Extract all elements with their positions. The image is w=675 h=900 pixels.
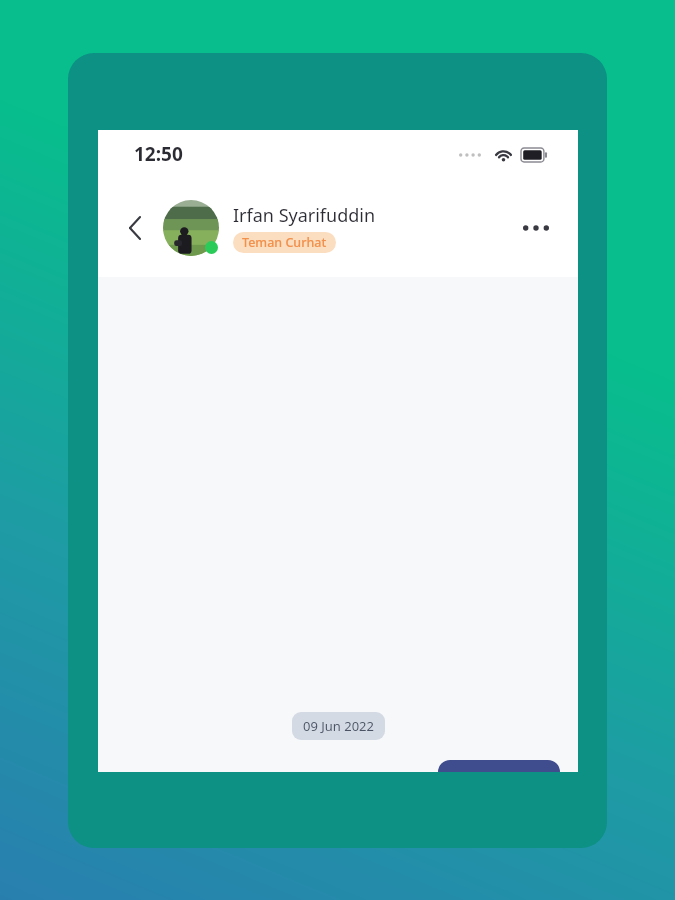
- button[interactable]: Back: [116, 209, 154, 247]
- staticText: 09 Jun 2022: [303, 717, 374, 735]
- button[interactable]: [438, 760, 560, 772]
- staticText: 12:50: [134, 141, 183, 167]
- button[interactable]: More options: [516, 208, 556, 248]
- button[interactable]: Profile photo: [163, 200, 219, 256]
- button[interactable]: Teman Curhat: [233, 232, 336, 253]
- staticText: Irfan Syarifuddin: [233, 203, 376, 228]
- button[interactable]: 09 Jun 2022: [292, 712, 385, 740]
- staticText: Teman Curhat: [242, 234, 327, 251]
